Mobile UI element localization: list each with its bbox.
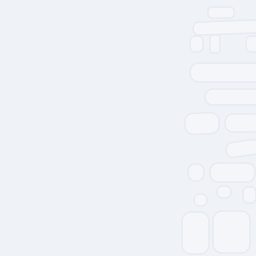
button[interactable]: Option two: [225, 114, 256, 132]
button[interactable]: Item: [210, 163, 255, 182]
button[interactable]: Item icon: [188, 164, 204, 181]
button[interactable]: Search: [190, 63, 256, 82]
button[interactable]: First card: [182, 212, 209, 254]
button[interactable]: More: [246, 36, 256, 52]
button[interactable]: Option one: [185, 113, 219, 134]
button[interactable]: Filter: [210, 35, 220, 53]
button[interactable]: Back: [190, 36, 203, 52]
button[interactable]: Second card: [213, 211, 250, 253]
